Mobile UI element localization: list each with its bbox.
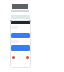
button[interactable] (11, 33, 30, 38)
button[interactable] (11, 45, 30, 51)
